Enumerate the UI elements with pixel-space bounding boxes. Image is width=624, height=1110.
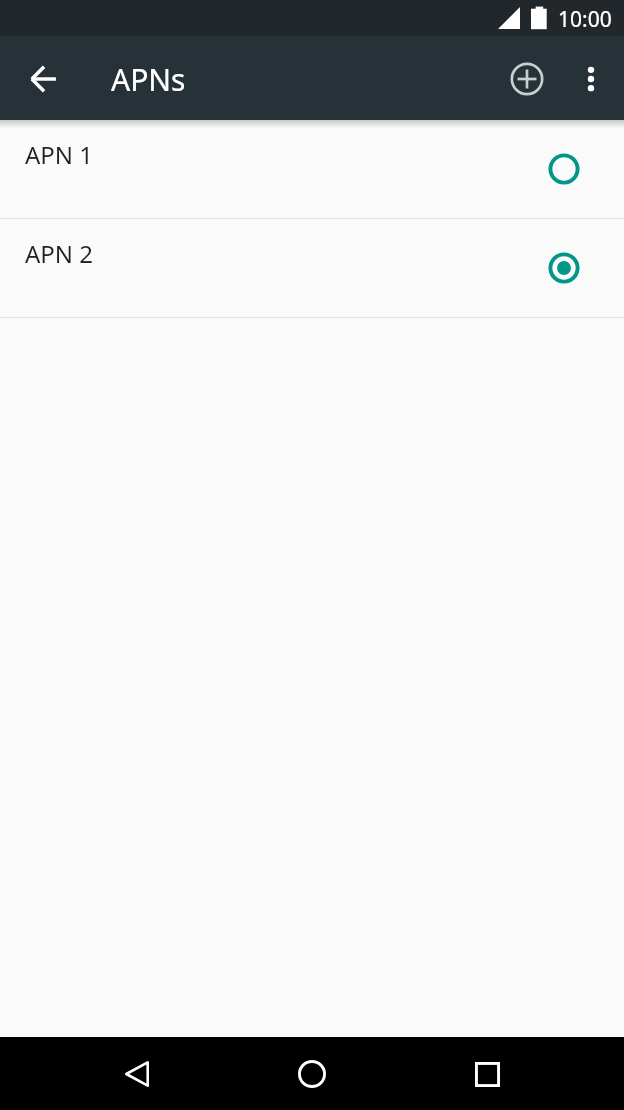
staticText: APN 2 [25, 237, 94, 270]
button[interactable]: Back [104, 1042, 168, 1106]
button[interactable]: Recent apps [455, 1042, 519, 1106]
staticText: APN 1 [25, 138, 94, 171]
button[interactable]: APN 1 [0, 120, 624, 218]
button[interactable]: Navigate up [11, 47, 75, 111]
button[interactable]: APN 2 [0, 219, 624, 317]
button[interactable]: New APN [495, 47, 559, 111]
staticText: APNs [111, 59, 186, 100]
staticText: 10:00 [558, 5, 612, 34]
button[interactable]: More options [559, 47, 623, 111]
button[interactable]: Home [280, 1042, 344, 1106]
